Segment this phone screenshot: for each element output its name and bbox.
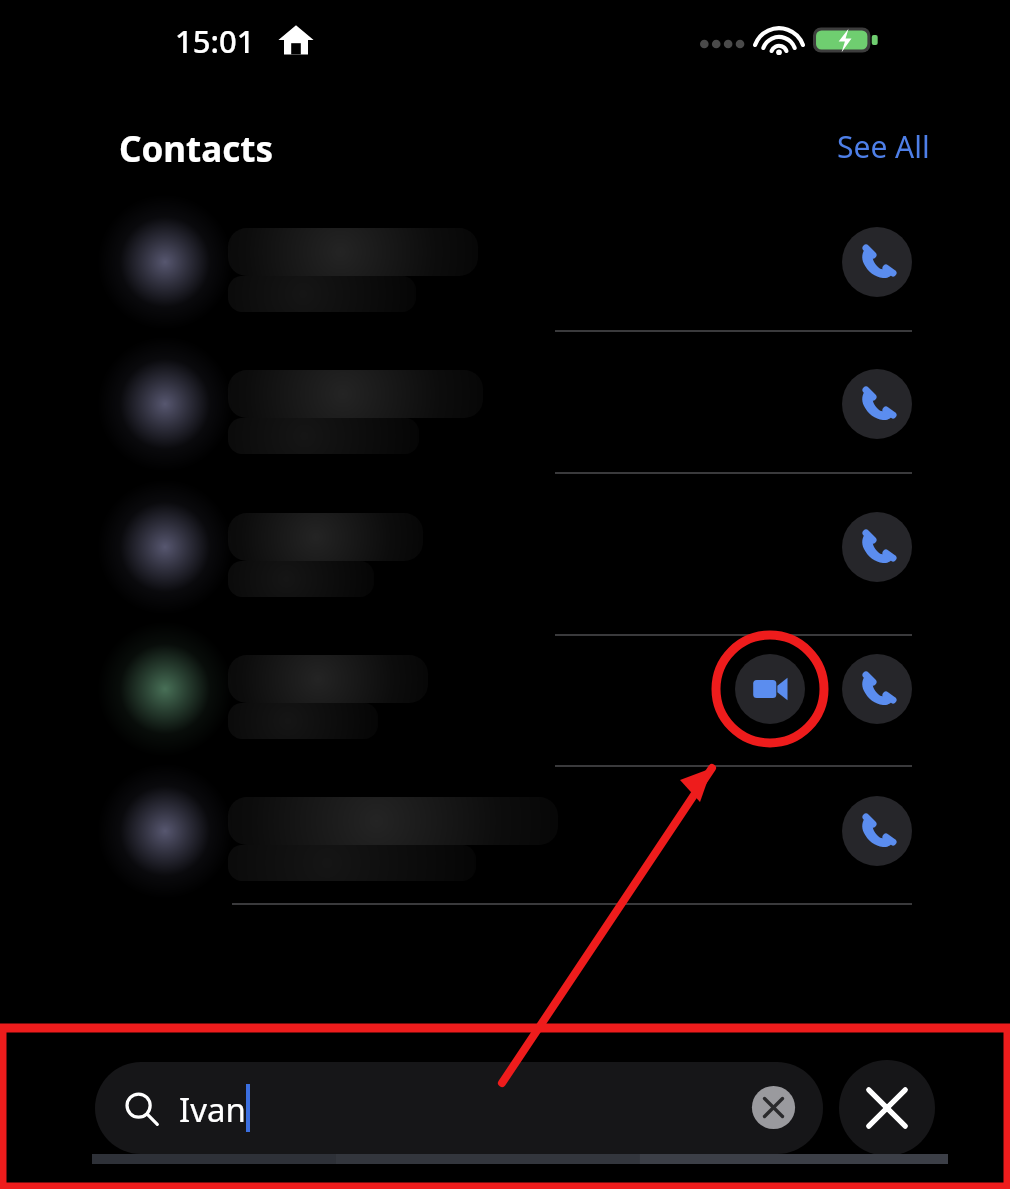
button[interactable]: Call [842,796,912,866]
staticText: See All [837,126,930,167]
button[interactable] [100,192,230,332]
staticText: Ivan [179,1087,246,1132]
button[interactable]: Call [842,227,912,297]
button[interactable] [100,334,230,474]
button[interactable]: Close search [839,1060,935,1156]
button[interactable]: Video call [735,654,805,724]
button[interactable]: Clear text [751,1085,796,1130]
button[interactable] [100,477,230,617]
button[interactable] [100,761,230,901]
staticText: 15:01 [175,20,255,62]
button[interactable]: See All [800,118,930,174]
button[interactable] [100,619,230,759]
button[interactable]: Ivan [95,1062,823,1154]
button[interactable]: Call [842,369,912,439]
button[interactable]: Call [842,512,912,582]
staticText: Contacts [119,125,274,173]
button[interactable]: Call [842,654,912,724]
